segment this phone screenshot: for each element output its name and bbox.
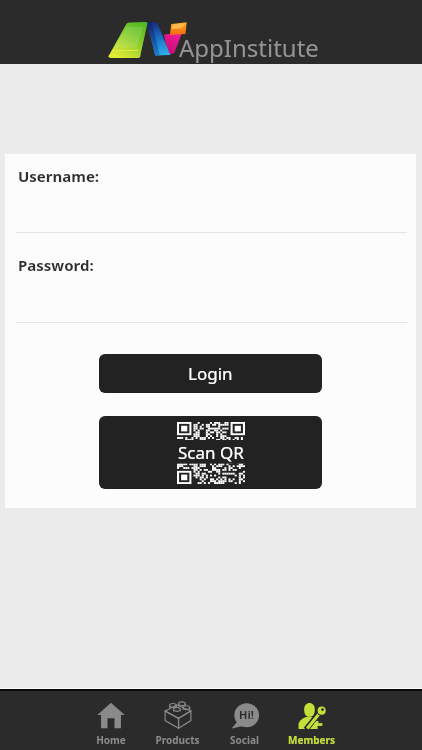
staticText: Hi! (239, 707, 254, 722)
staticText: Password: (18, 255, 94, 275)
button[interactable]: Social (211, 691, 278, 750)
button[interactable]: Login (99, 354, 322, 393)
staticText: Home (96, 733, 126, 747)
button[interactable]: Members (278, 691, 345, 750)
staticText: Products (155, 733, 200, 747)
staticText: Login (188, 362, 233, 385)
staticText: Members (288, 733, 335, 747)
button[interactable]: Products (144, 691, 211, 750)
staticText: Social (230, 733, 259, 747)
button[interactable]: Scan QR (99, 416, 322, 489)
staticText: Username: (18, 166, 100, 186)
button[interactable]: Home (77, 691, 144, 750)
staticText: AppInstitute (179, 31, 319, 64)
staticText: Scan QR (178, 441, 244, 464)
